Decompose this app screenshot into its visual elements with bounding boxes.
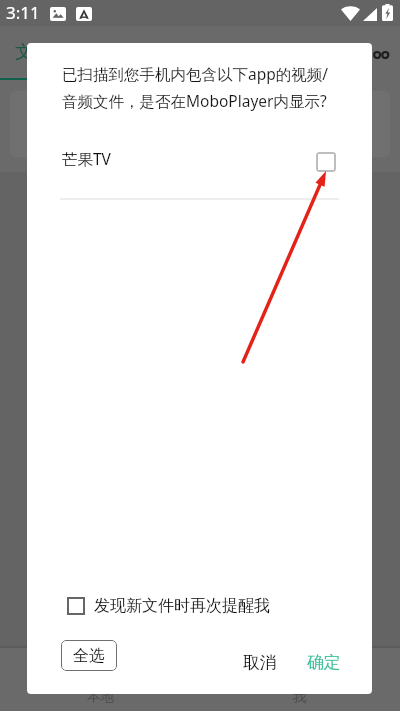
staticText: 本地 [87,688,114,705]
staticText: 发现新文件时再次提醒我 [94,596,270,616]
staticText: 3:11 [6,1,40,24]
staticText: 芒果TV [62,148,111,169]
button[interactable]: 全选 [61,640,117,671]
staticText: 已扫描到您手机内包含以下app的视频/ 音频文件，是否在MoboPlayer内显… [62,63,329,112]
staticText: 确定 [307,652,341,673]
button[interactable]: 取消 [229,647,291,677]
staticText: 我 [293,688,307,705]
button[interactable]: 芒果TV [27,133,372,183]
staticText: 文件 [15,41,51,64]
staticText: 全选 [73,646,105,666]
button[interactable]: 我 [200,648,400,711]
button[interactable]: More options [371,44,393,66]
staticText: 取消 [243,652,277,673]
button[interactable]: 确定 [293,647,355,677]
button[interactable]: 发现新文件时再次提醒我 [67,593,270,619]
button[interactable]: 本地 [0,648,200,711]
